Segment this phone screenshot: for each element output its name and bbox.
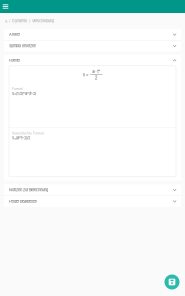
- button[interactable]: Speichern: [164, 274, 179, 289]
- staticText: Vereinfachte Formel: [12, 132, 44, 135]
- staticText: Verschiebung: [32, 19, 54, 23]
- button[interactable]: Verschiebung: [32, 19, 54, 23]
- button[interactable]: Felder bearbeiten: [4, 196, 181, 207]
- button[interactable]: Menü: [1, 2, 10, 11]
- staticText: s=(a*t^2)/2: [12, 136, 30, 140]
- button[interactable]: Dynamik: [12, 19, 27, 23]
- button[interactable]: Start: [5, 19, 7, 23]
- staticText: Formel: [12, 87, 23, 91]
- staticText: 2: [95, 75, 98, 81]
- staticText: /: [29, 19, 30, 23]
- staticText: s =: [83, 72, 89, 77]
- staticText: Symbol ersetzen: [9, 44, 36, 48]
- staticText: Artikel: [9, 32, 20, 37]
- button[interactable]: Symbol ersetzen: [4, 40, 181, 51]
- button[interactable]: Notizen zur Berechnung: [4, 184, 181, 195]
- staticText: Notizen zur Berechnung: [9, 188, 48, 192]
- staticText: Felder bearbeiten: [9, 199, 37, 203]
- staticText: Formel: [9, 58, 20, 63]
- staticText: Dynamik: [12, 19, 27, 23]
- button[interactable]: Artikel: [4, 29, 181, 40]
- staticText: a · t²: [92, 69, 100, 74]
- staticText: ⌂: [5, 19, 7, 23]
- staticText: /: [9, 19, 10, 23]
- button[interactable]: Formel: [4, 55, 181, 66]
- staticText: s=(1/2)*a*(t^2): [12, 91, 36, 96]
